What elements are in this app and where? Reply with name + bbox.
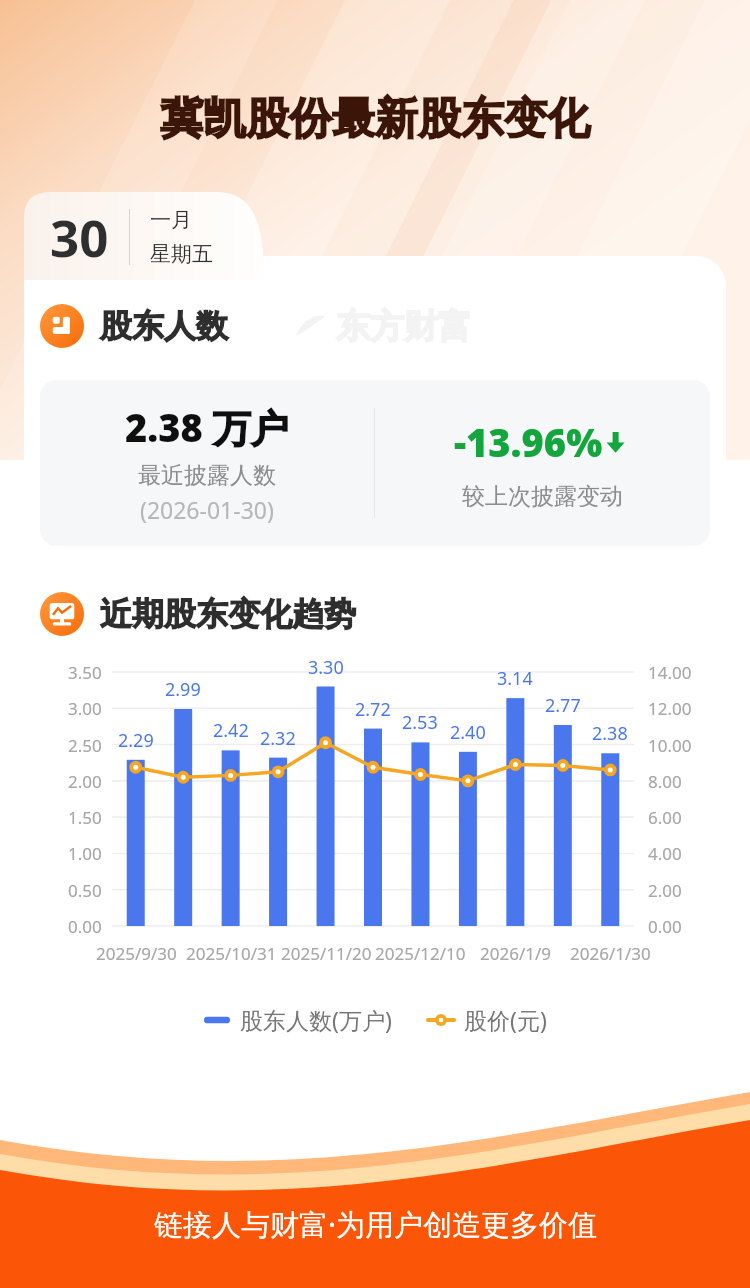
staticText: 8.00 bbox=[648, 770, 682, 793]
staticText: 星期五 bbox=[150, 241, 213, 267]
staticText: 链接人与财富·为用户创造更多价值 bbox=[154, 1204, 597, 1244]
staticText: 0.50 bbox=[68, 879, 102, 902]
staticText: 2.40 bbox=[450, 720, 486, 745]
staticText: 2.32 bbox=[260, 726, 296, 751]
staticText: 0.00 bbox=[68, 915, 102, 938]
staticText: 3.14 bbox=[497, 666, 533, 691]
other: 趋势图 bbox=[40, 592, 84, 636]
button[interactable]: 股东人数 bbox=[40, 304, 228, 348]
staticText: 14.00 bbox=[648, 661, 692, 684]
staticText: 2.38 bbox=[592, 721, 628, 746]
staticText: 4.00 bbox=[648, 842, 682, 865]
staticText: 2.53 bbox=[402, 710, 438, 735]
staticText: 一月 bbox=[150, 207, 192, 233]
staticText: 10.00 bbox=[648, 734, 692, 757]
staticText: 2026/1/30 bbox=[570, 942, 651, 965]
staticText: 3.00 bbox=[68, 697, 102, 720]
button[interactable]: 30 bbox=[24, 192, 264, 280]
staticText: 2.38 万户 bbox=[125, 401, 289, 453]
staticText: 12.00 bbox=[648, 697, 692, 720]
staticText: 2.29 bbox=[118, 728, 154, 753]
button[interactable]: 2.38 万户 bbox=[40, 380, 710, 546]
staticText: 2.00 bbox=[648, 879, 682, 902]
staticText: 0.00 bbox=[648, 915, 682, 938]
staticText: 3.30 bbox=[308, 655, 344, 680]
staticText: -13.96% bbox=[454, 416, 603, 468]
staticText: 2.42 bbox=[213, 718, 249, 743]
staticText: 2.99 bbox=[165, 677, 201, 702]
other: 股东人数 bbox=[40, 304, 84, 348]
staticText: 2.00 bbox=[68, 770, 102, 793]
staticText: 2025/11/20 bbox=[281, 942, 372, 965]
staticText: 近期股东变化趋势 bbox=[100, 594, 356, 634]
staticText: 股东人数(万户) bbox=[240, 1004, 392, 1035]
staticText: (2026-01-30) bbox=[140, 494, 274, 525]
staticText: 2026/1/9 bbox=[480, 942, 551, 965]
staticText: 3.50 bbox=[68, 661, 102, 684]
staticText: 冀凯股份最新股东变化 bbox=[160, 92, 590, 146]
staticText: 1.00 bbox=[68, 842, 102, 865]
staticText: 东方财富 bbox=[336, 305, 472, 348]
button[interactable]: 趋势图 bbox=[40, 592, 356, 636]
staticText: 2025/12/10 bbox=[375, 942, 466, 965]
staticText: 2025/9/30 bbox=[96, 942, 177, 965]
staticText: 6.00 bbox=[648, 806, 682, 829]
staticText: 1.50 bbox=[68, 806, 102, 829]
staticText: 2.50 bbox=[68, 734, 102, 757]
staticText: 最近披露人数 bbox=[138, 461, 276, 490]
staticText: 股东人数 bbox=[100, 306, 228, 346]
staticText: 股价(元) bbox=[464, 1004, 547, 1035]
staticText: 较上次披露变动 bbox=[462, 482, 623, 511]
staticText: 2.72 bbox=[355, 697, 391, 722]
staticText: 2025/10/31 bbox=[186, 942, 277, 965]
staticText: 2.77 bbox=[545, 693, 581, 718]
staticText: 30 bbox=[50, 202, 109, 271]
